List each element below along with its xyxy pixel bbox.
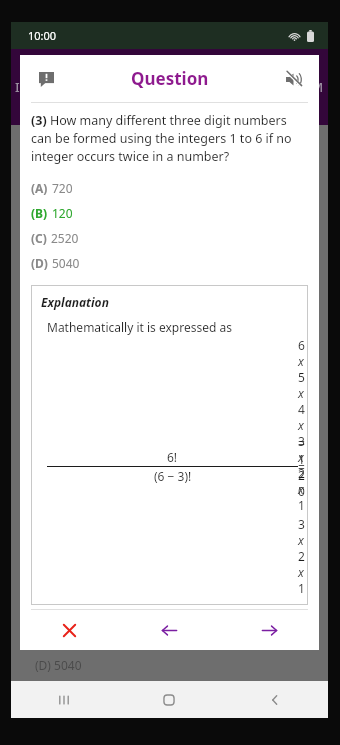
staticText: 5040 xyxy=(52,255,80,271)
button[interactable]: Home xyxy=(116,681,222,718)
staticText: EM xyxy=(304,78,324,96)
button[interactable]: (B) xyxy=(31,200,308,225)
staticText: 2520 xyxy=(51,230,79,246)
staticText: (6 − 3)! xyxy=(154,468,192,484)
button[interactable]: Recent apps xyxy=(11,681,116,718)
staticText: (3) How many different three digit numbe… xyxy=(31,112,308,165)
staticText: (A) xyxy=(31,180,48,196)
button[interactable]: Report question xyxy=(29,62,63,96)
button[interactable]: (A) xyxy=(31,175,308,200)
staticText: 120 xyxy=(52,205,73,221)
button[interactable]: Close xyxy=(20,610,119,650)
staticText: 720 xyxy=(52,180,73,196)
button[interactable]: Mute sound xyxy=(276,62,310,96)
staticText: Question xyxy=(131,67,209,90)
staticText: 6! xyxy=(167,449,178,465)
button[interactable]: (D) xyxy=(31,250,308,275)
staticText: (B) xyxy=(31,205,48,221)
button[interactable]: Previous xyxy=(119,610,219,650)
button[interactable]: (C) xyxy=(31,225,308,250)
staticText: 10:00 xyxy=(28,28,57,43)
staticText: IGI xyxy=(15,78,34,96)
staticText: Explanation xyxy=(41,294,109,310)
button[interactable]: Next xyxy=(219,610,319,650)
staticText: (D) 5040 xyxy=(35,657,82,673)
staticText: Mathematically it is expressed as xyxy=(47,319,232,335)
button[interactable]: Back xyxy=(222,681,328,718)
staticText: (D) xyxy=(31,255,48,271)
staticText: (C) xyxy=(31,230,47,246)
